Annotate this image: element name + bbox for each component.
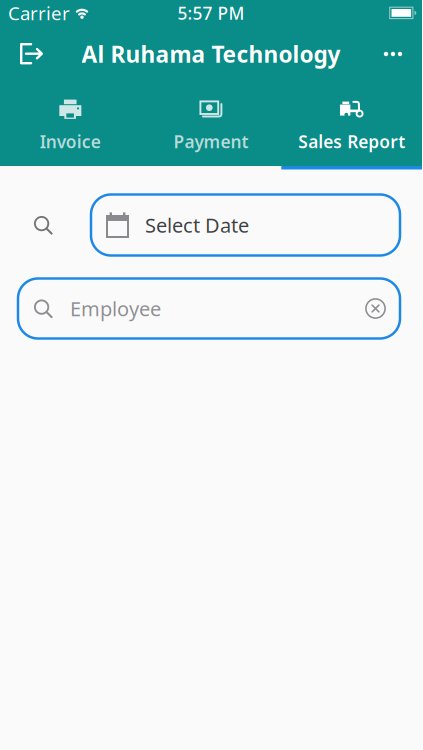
button[interactable]: Select Date: [91, 194, 400, 255]
button[interactable]: Payment: [141, 82, 281, 166]
staticText: Carrier: [8, 1, 70, 25]
staticText: Select Date: [145, 212, 249, 238]
staticText: Al Ruhama Technology: [81, 39, 340, 69]
button[interactable]: Sales Report: [281, 82, 422, 166]
button[interactable]: Invoice: [0, 82, 141, 166]
button[interactable]: Search: [33, 215, 53, 235]
button[interactable]: Employee: [18, 278, 400, 338]
button[interactable]: Clear: [365, 298, 400, 319]
staticText: Invoice: [40, 130, 101, 153]
staticText: 5:57 PM: [177, 1, 244, 24]
staticText: Sales Report: [298, 130, 405, 153]
staticText: Employee: [70, 295, 161, 322]
button[interactable]: Log out: [0, 43, 43, 65]
staticText: Payment: [173, 130, 248, 153]
button[interactable]: More options: [383, 49, 422, 59]
